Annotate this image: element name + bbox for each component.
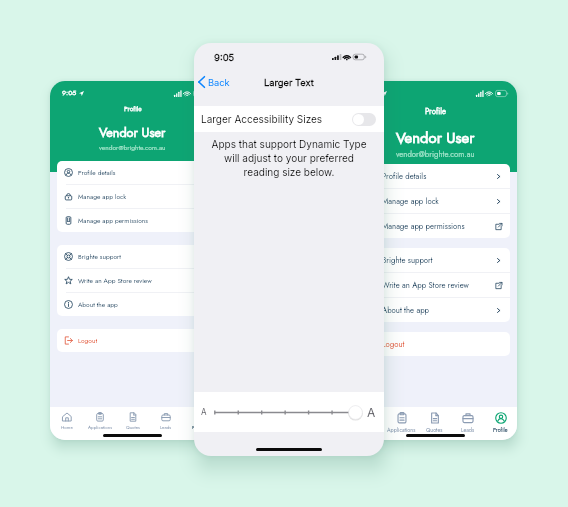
button[interactable]: Quotes: [116, 412, 149, 431]
staticText: Profile: [192, 424, 205, 431]
staticText: Manage app lock: [78, 192, 127, 202]
staticText: Larger Text: [264, 77, 314, 88]
button[interactable]: Profile details: [57, 161, 208, 184]
staticText: vendor@brighte.com.au: [99, 143, 166, 153]
staticText: Brighte support: [78, 252, 121, 262]
button[interactable]: Home: [50, 412, 83, 431]
staticText: Quotes: [126, 424, 140, 431]
button[interactable]: Applications: [385, 412, 418, 434]
staticText: Profile: [493, 426, 508, 434]
button[interactable]: Home: [353, 412, 385, 434]
staticText: Back: [208, 77, 230, 88]
button[interactable]: Profile: [484, 412, 517, 434]
staticText: Manage app permissions: [382, 221, 465, 232]
staticText: Manage app lock: [382, 196, 439, 207]
button[interactable]: Applications: [83, 412, 116, 431]
staticText: Write an App Store review: [382, 280, 469, 291]
staticText: 9:05: [62, 88, 77, 98]
staticText: Write an App Store review: [78, 276, 152, 286]
staticText: Logout: [382, 339, 405, 350]
button[interactable]: Manage app lock: [360, 189, 510, 213]
staticText: Leads: [461, 426, 475, 434]
button[interactable]: Write an App Store review: [360, 273, 510, 297]
staticText: Vendor User: [99, 124, 166, 142]
button[interactable]: Leads: [149, 412, 182, 431]
staticText: 9:05: [214, 52, 235, 63]
staticText: Vendor User: [396, 127, 475, 148]
button[interactable]: About the app: [57, 293, 208, 316]
staticText: Home: [362, 426, 376, 434]
staticText: Home: [61, 424, 73, 431]
button[interactable]: Manage app permissions: [57, 209, 208, 232]
staticText: Profile details: [78, 168, 116, 178]
staticText: Applications: [387, 426, 416, 434]
staticText: Profile details: [382, 171, 427, 182]
staticText: Apps that support Dynamic Type will adju…: [207, 138, 371, 179]
button[interactable]: Brighte support: [57, 245, 208, 268]
button[interactable]: Profile: [182, 412, 215, 431]
button[interactable]: Brighte support: [360, 248, 510, 272]
staticText: Manage app permissions: [78, 216, 148, 226]
button[interactable]: Leads: [451, 412, 484, 434]
staticText: Larger Accessibility Sizes: [201, 113, 323, 125]
staticText: vendor@brighte.com.au: [396, 149, 475, 160]
button[interactable]: Logout: [57, 329, 208, 352]
button[interactable]: Quotes: [418, 412, 451, 434]
staticText: Brighte support: [382, 255, 433, 266]
staticText: Profile: [124, 104, 142, 114]
button[interactable]: Manage app lock: [57, 185, 208, 208]
staticText: About the app: [382, 305, 430, 316]
staticText: Profile: [425, 106, 446, 117]
button[interactable]: Text size slider: [214, 404, 363, 421]
button[interactable]: About the app: [360, 298, 510, 322]
staticText: A: [367, 405, 376, 420]
staticText: Logout: [78, 336, 97, 346]
button[interactable]: Logout: [360, 332, 510, 356]
staticText: Quotes: [426, 426, 443, 434]
staticText: Applications: [88, 424, 112, 431]
staticText: Leads: [160, 424, 172, 431]
button[interactable]: Profile details: [360, 164, 510, 188]
button[interactable]: Back: [194, 73, 236, 91]
button[interactable]: Manage app permissions: [360, 214, 510, 238]
button[interactable]: Larger Accessibility Sizes: [194, 106, 384, 132]
button[interactable]: Write an App Store review: [57, 269, 208, 292]
staticText: A: [201, 407, 207, 417]
staticText: About the app: [78, 300, 118, 310]
